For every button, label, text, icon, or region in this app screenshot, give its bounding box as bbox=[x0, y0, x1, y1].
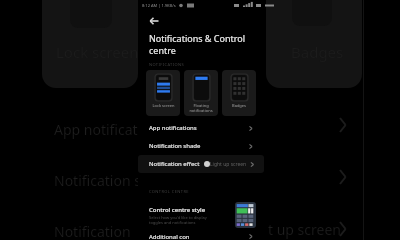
staticText: Notifications & Control bbox=[149, 32, 246, 44]
staticText: Light up screen bbox=[210, 161, 247, 168]
button[interactable]: Control centre style bbox=[138, 197, 264, 233]
button[interactable]: Floating notifications bbox=[184, 70, 218, 116]
staticText: 8:12 AM | 1.9KB/s bbox=[142, 3, 176, 8]
button[interactable]: Notification shade bbox=[138, 137, 264, 155]
staticText: t up screen bbox=[268, 220, 341, 239]
button[interactable]: Badges bbox=[222, 70, 256, 116]
staticText: NOTIFICATIONS bbox=[149, 62, 184, 67]
staticText: Control centre style bbox=[149, 206, 206, 214]
button[interactable]: Notification effect bbox=[138, 155, 264, 173]
staticText: centre bbox=[149, 44, 176, 56]
staticText: Notification effect bbox=[149, 160, 200, 168]
staticText: Notification bbox=[54, 222, 131, 240]
staticText: Additional con bbox=[149, 233, 190, 240]
staticText: Select how you'd like to display toggles… bbox=[149, 215, 207, 225]
button[interactable]: Lock screen bbox=[146, 70, 180, 116]
button[interactable]: Additional con bbox=[138, 233, 264, 240]
staticText: Notification shade bbox=[149, 142, 201, 150]
staticText: App notificat bbox=[54, 120, 138, 139]
button[interactable]: Back bbox=[147, 14, 161, 28]
staticText: App notifications bbox=[149, 124, 197, 132]
staticText: Notification s bbox=[54, 171, 141, 190]
staticText: Badges bbox=[232, 103, 246, 108]
staticText: Floating notifications bbox=[189, 103, 213, 113]
button[interactable]: App notifications bbox=[138, 119, 264, 137]
staticText: CONTROL CENTRE bbox=[149, 189, 189, 194]
staticText: Lock screen bbox=[152, 103, 175, 108]
